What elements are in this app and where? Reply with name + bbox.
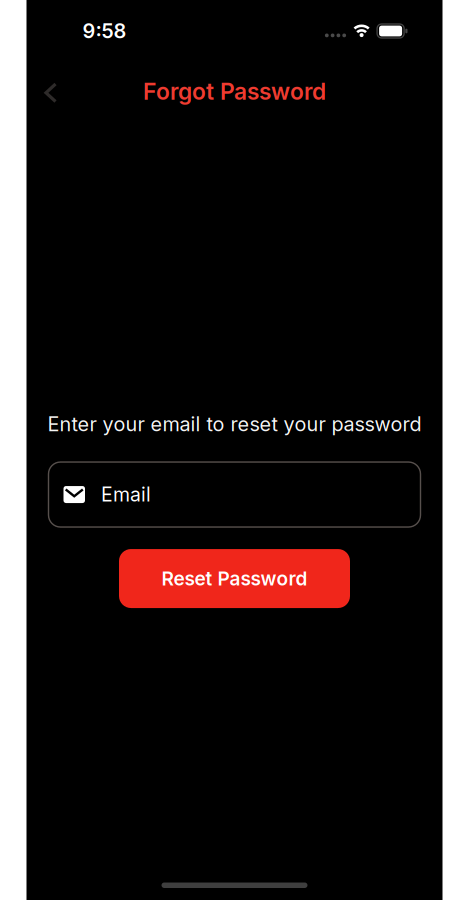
staticText: Enter your email to reset your password bbox=[47, 412, 421, 436]
staticText: Email bbox=[101, 483, 151, 506]
button[interactable]: Reset Password bbox=[119, 549, 350, 608]
staticText: 9:58 bbox=[82, 19, 126, 43]
staticText: Reset Password bbox=[161, 567, 307, 590]
staticText: Forgot Password bbox=[143, 78, 326, 105]
button[interactable]: Back bbox=[26, 76, 56, 109]
button[interactable]: Email bbox=[48, 462, 420, 527]
